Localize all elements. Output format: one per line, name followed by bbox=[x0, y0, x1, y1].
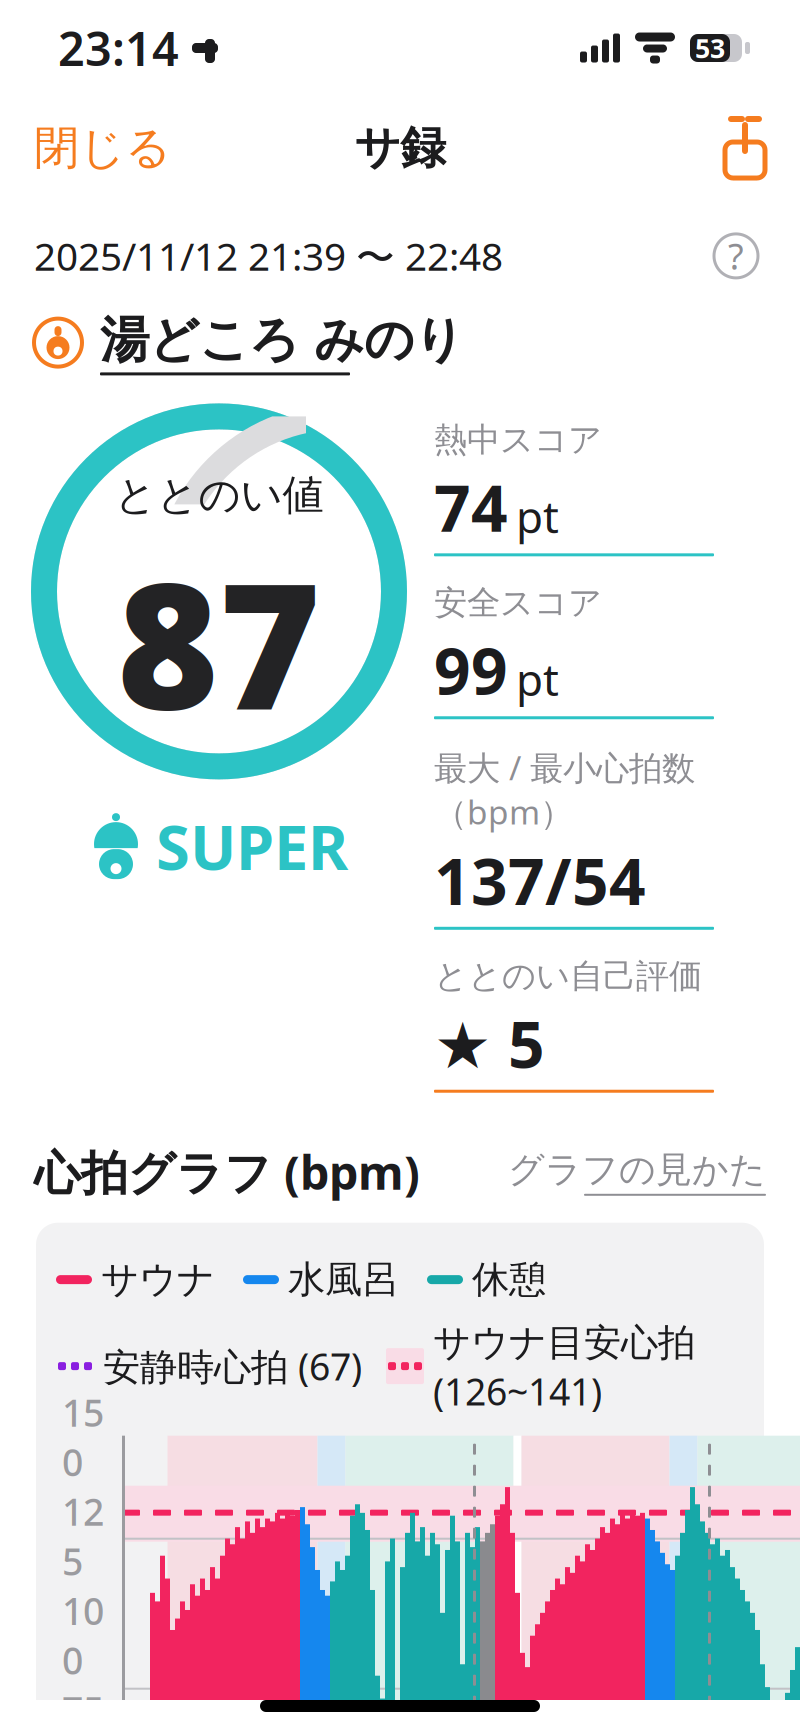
button[interactable]: 閉じる bbox=[0, 104, 205, 192]
staticText: サウナ目安心拍 (126~141) bbox=[433, 1316, 695, 1416]
staticText: 150 bbox=[62, 1387, 104, 1487]
staticText: 87 bbox=[117, 527, 321, 757]
staticText: 74 bbox=[434, 464, 508, 549]
button[interactable]: 湯どころ みのり bbox=[0, 306, 496, 379]
staticText: pt bbox=[516, 487, 559, 545]
staticText: サ録 bbox=[354, 120, 445, 176]
staticText: 最大 / 最小心拍数（bpm） bbox=[434, 745, 695, 834]
staticText: ★ 5 bbox=[434, 1001, 545, 1086]
staticText: 53 bbox=[695, 30, 725, 66]
staticText: 水風呂 bbox=[288, 1257, 399, 1303]
staticText: 湯どころ みのり bbox=[100, 310, 464, 370]
staticText: ? bbox=[728, 232, 744, 280]
staticText: グラフの見かた bbox=[508, 1148, 766, 1192]
staticText: 熱中スコア bbox=[434, 419, 602, 460]
staticText: 心拍グラフ (bpm) bbox=[34, 1141, 420, 1203]
staticText: pt bbox=[516, 650, 559, 708]
staticText: 99 bbox=[434, 627, 508, 712]
staticText: ととのい値 bbox=[114, 470, 323, 521]
staticText: 閉じる bbox=[34, 120, 171, 176]
button[interactable]: ヘルプ bbox=[706, 224, 766, 288]
staticText: 137/54 bbox=[434, 838, 646, 923]
staticText: 安全スコア bbox=[434, 582, 602, 623]
staticText: 休憩 bbox=[472, 1257, 546, 1303]
staticText: SUPER bbox=[156, 805, 348, 887]
staticText: サウナ bbox=[101, 1257, 215, 1303]
button[interactable]: 共有 bbox=[690, 107, 800, 189]
staticText: 23:14 bbox=[58, 17, 179, 79]
staticText: 安静時心拍 (67) bbox=[103, 1341, 362, 1391]
staticText: 100 bbox=[62, 1586, 104, 1685]
staticText: 2025/11/12 21:39 〜 22:48 bbox=[34, 230, 503, 282]
staticText: ととのい自己評価 bbox=[434, 956, 702, 997]
button[interactable]: グラフの見かた bbox=[508, 1148, 766, 1196]
staticText: 125 bbox=[62, 1486, 104, 1586]
staticText: 75 bbox=[62, 1685, 104, 1730]
